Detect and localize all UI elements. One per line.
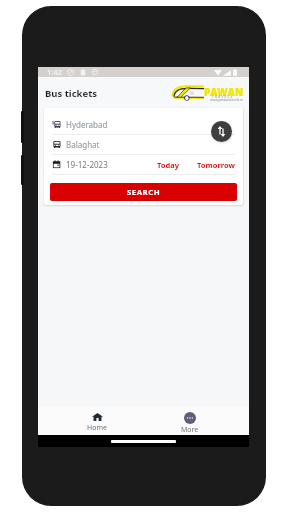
button[interactable]: Swap source and destination (211, 121, 232, 142)
staticText: T R A V E L S (212, 95, 233, 99)
staticText: More (181, 425, 199, 435)
staticText: Hyderabad (66, 119, 108, 130)
staticText: Today (157, 160, 180, 170)
staticText: 19-12-2023 (66, 159, 108, 170)
button[interactable]: Balaghat (44, 135, 243, 154)
staticText: www.pawantravels.in (210, 97, 243, 101)
button[interactable]: Tomorrow (195, 157, 238, 173)
staticText: Home (87, 423, 107, 433)
button[interactable]: More (143, 407, 237, 435)
button[interactable]: Today (155, 157, 182, 173)
button[interactable]: Home (50, 407, 143, 435)
staticText: Bus tickets (45, 87, 98, 100)
staticText: 1:42 (47, 67, 62, 77)
button[interactable]: Hyderabad (44, 115, 243, 134)
staticText: Balaghat (66, 139, 100, 150)
staticText: PAWAN (204, 86, 244, 99)
staticText: Tomorrow (197, 160, 236, 170)
button[interactable]: SEARCH (50, 183, 237, 201)
staticText: SEARCH (127, 187, 161, 198)
